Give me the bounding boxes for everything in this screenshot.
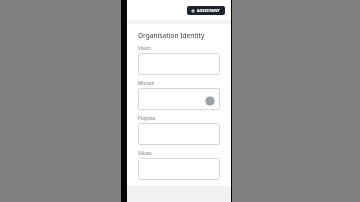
button[interactable]: Purpose input — [138, 123, 220, 145]
staticText: ASSISTANT — [197, 8, 221, 13]
staticText: Values — [138, 150, 152, 156]
staticText: Mission — [138, 80, 155, 86]
staticText: Purpose — [138, 115, 156, 121]
staticText: Vision — [138, 45, 151, 51]
button[interactable]: Mission input — [138, 88, 220, 110]
staticText: Organisation Identity — [138, 31, 205, 40]
button[interactable]: Vision input — [138, 53, 220, 75]
button[interactable]: Values input — [138, 158, 220, 180]
button[interactable]: Assistant — [187, 6, 225, 15]
